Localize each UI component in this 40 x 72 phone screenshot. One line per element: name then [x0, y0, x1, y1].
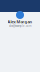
staticText: Alex Morgan [7, 19, 32, 24]
staticText: alex@example.com [9, 24, 31, 28]
